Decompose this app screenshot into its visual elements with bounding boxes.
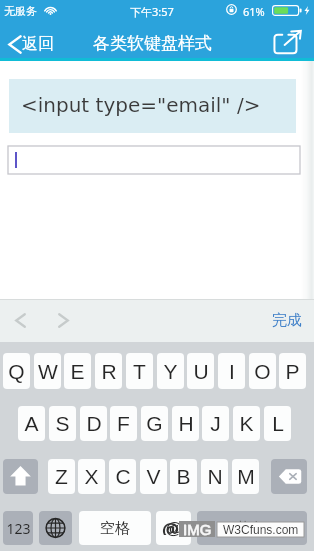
staticText: M xyxy=(237,465,255,488)
button[interactable]: Z xyxy=(48,459,75,494)
button[interactable]: A xyxy=(18,406,45,441)
button[interactable]: V xyxy=(140,459,167,494)
staticText: Q xyxy=(8,360,25,383)
staticText: 下午3:57 xyxy=(130,4,174,19)
button[interactable]: M xyxy=(232,459,259,494)
button[interactable]: G xyxy=(141,406,168,441)
button[interactable]: Next field xyxy=(48,305,78,335)
staticText: T xyxy=(133,360,146,383)
staticText: I xyxy=(229,360,235,383)
staticText: Y xyxy=(163,360,178,383)
staticText: P xyxy=(285,360,300,383)
button[interactable]: B xyxy=(170,459,197,494)
button[interactable]: S xyxy=(49,406,76,441)
button[interactable]: W xyxy=(34,353,61,389)
button[interactable]: 返回 xyxy=(8,34,54,54)
button[interactable]: D xyxy=(80,406,107,441)
staticText: O xyxy=(254,360,271,383)
button[interactable]: J xyxy=(202,406,229,441)
button[interactable]: Backspace xyxy=(271,459,307,494)
button[interactable] xyxy=(8,146,300,174)
staticText: W3Cfuns.com xyxy=(223,523,299,536)
button[interactable]: 123 xyxy=(3,511,33,545)
button[interactable]: F xyxy=(110,406,137,441)
button[interactable]: T xyxy=(126,353,153,389)
staticText: 换行 xyxy=(237,519,267,538)
button[interactable]: Switch keyboard xyxy=(39,511,72,545)
button[interactable]: N xyxy=(201,459,228,494)
button[interactable]: Previous field xyxy=(5,305,35,335)
staticText: X xyxy=(84,465,99,488)
button[interactable]: L xyxy=(264,406,291,441)
staticText: V xyxy=(146,465,161,488)
staticText: D xyxy=(86,412,102,435)
staticText: H xyxy=(178,412,194,435)
staticText: S xyxy=(55,412,70,435)
button[interactable]: O xyxy=(249,353,276,389)
staticText: N xyxy=(207,465,223,488)
button[interactable]: P xyxy=(279,353,306,389)
staticText: Z xyxy=(55,465,68,488)
button[interactable]: Share xyxy=(272,29,303,55)
button[interactable]: K xyxy=(233,406,260,441)
staticText: 空格 xyxy=(100,519,130,538)
button[interactable]: H xyxy=(172,406,199,441)
button[interactable]: 换行 xyxy=(197,511,307,545)
staticText: A xyxy=(24,412,39,435)
button[interactable]: 完成 xyxy=(272,311,302,330)
staticText: 61% xyxy=(243,4,265,19)
staticText: C xyxy=(115,465,131,488)
button[interactable]: I xyxy=(218,353,245,389)
staticText: @ xyxy=(165,519,183,538)
staticText: 完成 xyxy=(272,311,302,330)
button[interactable]: Y xyxy=(157,353,184,389)
button[interactable]: E xyxy=(64,353,91,389)
staticText: IMG xyxy=(183,521,212,537)
staticText: G xyxy=(146,412,163,435)
staticText: E xyxy=(70,360,85,383)
button[interactable]: @ xyxy=(156,511,191,545)
staticText: 各类软键盘样式 xyxy=(93,33,212,54)
button[interactable]: 空格 xyxy=(79,511,151,545)
button[interactable]: C xyxy=(109,459,136,494)
staticText: L xyxy=(272,412,284,435)
staticText: @ xyxy=(162,517,180,535)
staticText: <input type="email" /> xyxy=(21,93,261,116)
staticText: W xyxy=(38,360,58,383)
button[interactable]: R xyxy=(95,353,122,389)
staticText: F xyxy=(117,412,130,435)
staticText: U xyxy=(193,360,209,383)
staticText: 123 xyxy=(6,519,31,538)
staticText: J xyxy=(210,412,221,435)
staticText: K xyxy=(239,412,254,435)
button[interactable]: U xyxy=(187,353,214,389)
staticText: B xyxy=(176,465,191,488)
button[interactable]: X xyxy=(78,459,105,494)
staticText: R xyxy=(101,360,117,383)
button[interactable]: Q xyxy=(3,353,30,389)
staticText: 无服务 xyxy=(4,4,37,18)
button[interactable]: Shift xyxy=(3,459,38,494)
staticText: 返回 xyxy=(22,34,54,54)
